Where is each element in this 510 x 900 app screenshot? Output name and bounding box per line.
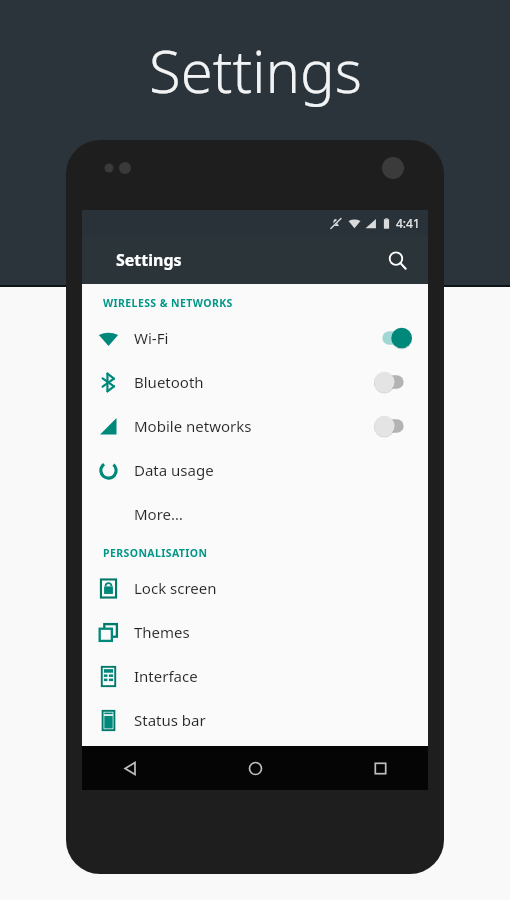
staticText: Wi-Fi: [134, 328, 374, 348]
staticText: WIRELESS & NETWORKS: [103, 296, 233, 310]
staticText: Interface: [134, 666, 428, 686]
button[interactable]: Search: [380, 243, 414, 277]
staticText: Themes: [134, 622, 428, 642]
button[interactable]: Interface: [82, 654, 428, 698]
staticText: Mobile networks: [134, 416, 374, 436]
button[interactable]: Bluetooth: [82, 360, 428, 404]
staticText: Settings: [149, 31, 362, 110]
staticText: Bluetooth: [134, 372, 374, 392]
staticText: Lock screen: [134, 578, 428, 598]
staticText: Settings: [116, 249, 182, 271]
button[interactable]: Back: [108, 746, 152, 790]
button[interactable]: Data usage: [82, 448, 428, 492]
button[interactable]: Recent apps: [358, 746, 402, 790]
button[interactable]: Themes: [82, 610, 428, 654]
button[interactable]: Wi-Fi: [82, 316, 428, 360]
staticText: Status bar: [134, 710, 428, 730]
staticText: PERSONALISATION: [103, 546, 208, 560]
staticText: Data usage: [134, 460, 428, 480]
button[interactable]: More…: [82, 492, 428, 536]
button[interactable]: Status bar: [82, 698, 428, 742]
button[interactable]: Home: [233, 746, 277, 790]
button[interactable]: Mobile networks: [82, 404, 428, 448]
staticText: 4:41: [396, 215, 420, 231]
button[interactable]: Lock screen: [82, 566, 428, 610]
staticText: More…: [134, 504, 428, 524]
